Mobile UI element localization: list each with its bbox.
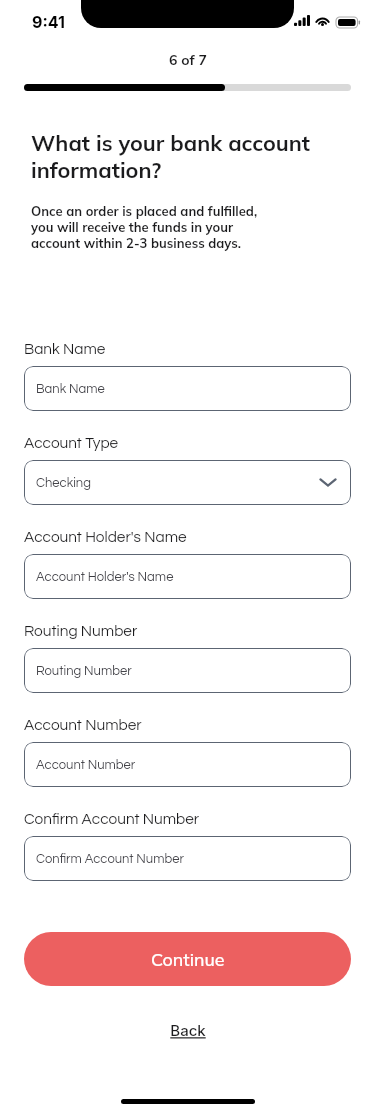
staticText: Confirm Account Number xyxy=(24,811,200,827)
button[interactable]: Back xyxy=(170,1021,206,1039)
staticText: Continue xyxy=(151,948,225,970)
staticText: 6 of 7 xyxy=(169,51,207,69)
staticText: Bank Name xyxy=(36,382,105,395)
staticText: Account Holder's Name xyxy=(36,570,174,583)
staticText: What is your bank account information? xyxy=(31,129,353,184)
staticText: Once an order is placed and fulfilled, y… xyxy=(31,203,258,251)
staticText: Bank Name xyxy=(24,341,106,357)
staticText: Account Type xyxy=(24,435,119,451)
staticText: Account Number xyxy=(24,717,142,733)
button[interactable]: Routing Number xyxy=(24,648,351,693)
button[interactable]: Checking xyxy=(24,460,351,505)
staticText: Confirm Account Number xyxy=(36,852,184,865)
staticText: 9:41 xyxy=(32,12,65,31)
button[interactable]: Confirm Account Number xyxy=(24,836,351,881)
button[interactable]: Account Number xyxy=(24,742,351,787)
staticText: Routing Number xyxy=(36,664,132,677)
staticText: Account Number xyxy=(36,758,136,771)
button[interactable]: Continue xyxy=(24,932,351,986)
other: Open account type menu xyxy=(319,477,337,488)
button[interactable]: Account Holder's Name xyxy=(24,554,351,599)
button[interactable]: Bank Name xyxy=(24,366,351,411)
staticText: Checking xyxy=(36,476,91,489)
staticText: Routing Number xyxy=(24,623,138,639)
staticText: Account Holder's Name xyxy=(24,529,187,545)
